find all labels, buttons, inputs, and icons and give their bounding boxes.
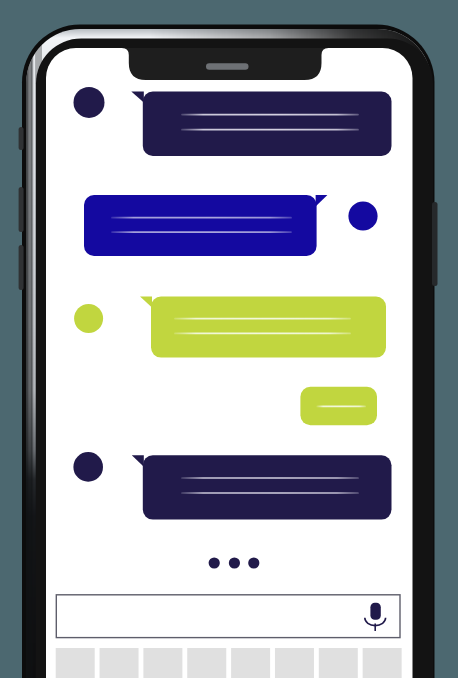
button[interactable]: Message from Ava: [131, 91, 392, 156]
button[interactable]: Your message: [84, 195, 328, 257]
button[interactable]: Message from Ava: [140, 296, 386, 358]
button[interactable]: Your message: [300, 387, 377, 426]
button[interactable]: Voice input: [364, 596, 400, 636]
button[interactable]: Type a message: [56, 594, 376, 637]
button[interactable]: Message from Ava: [131, 455, 392, 520]
